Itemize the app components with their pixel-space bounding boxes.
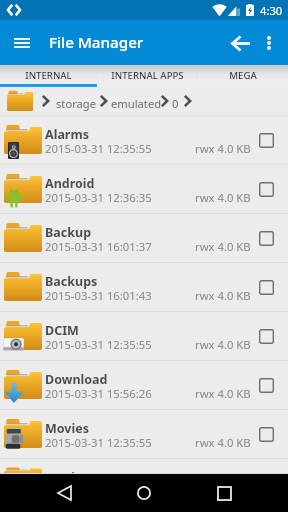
staticText: storage [56, 96, 97, 111]
button[interactable]: Select Alarms [259, 133, 274, 148]
staticText: 0 [172, 96, 179, 111]
staticText: Backup [45, 224, 92, 241]
button[interactable]: INTERNAL APPS [98, 65, 196, 84]
button[interactable]: INTERNAL [0, 65, 97, 84]
staticText: Download [45, 371, 108, 388]
button[interactable]: storage [53, 91, 100, 111]
staticText: Movies [45, 420, 89, 437]
staticText: Android [45, 175, 95, 192]
button[interactable]: Select Android [259, 182, 274, 197]
staticText: rwx 4.0 KB [195, 435, 251, 450]
button[interactable]: Navigate [41, 91, 49, 111]
button[interactable]: Select Movies [259, 427, 274, 442]
staticText: emulated [111, 96, 162, 111]
staticText: 2015-03-31 12:35:55 [45, 484, 152, 499]
button[interactable]: Music [0, 459, 288, 474]
staticText: MEGA [229, 69, 257, 82]
button[interactable]: Back [50, 479, 78, 507]
button[interactable]: Android [0, 165, 288, 214]
staticText: INTERNAL APPS [111, 69, 184, 82]
button[interactable]: Download [0, 361, 288, 410]
button[interactable]: Backup [0, 214, 288, 263]
staticText: rwx 4.0 KB [195, 239, 251, 254]
staticText: Alarms [45, 126, 89, 143]
button[interactable]: Recents [210, 479, 238, 507]
staticText: 2015-03-31 12:36:35 [45, 190, 152, 205]
staticText: rwx 4.0 KB [195, 141, 251, 156]
staticText: rwx 4.0 KB [195, 484, 251, 499]
staticText: 4:30 [260, 3, 283, 18]
button[interactable]: Movies [0, 410, 288, 459]
button[interactable]: DCIM [0, 312, 288, 361]
staticText: 2015-03-31 12:35:55 [45, 337, 152, 352]
button[interactable]: More options [254, 28, 284, 58]
staticText: Music [45, 469, 82, 484]
staticText: DCIM [45, 322, 79, 339]
button[interactable]: Select Backups [259, 280, 274, 295]
button[interactable]: Home [130, 479, 158, 507]
button[interactable]: emulated [108, 91, 165, 111]
button[interactable]: Navigate [183, 91, 191, 111]
button[interactable]: Select Download [259, 378, 274, 393]
staticText: rwx 4.0 KB [195, 386, 251, 401]
staticText: File Manager [49, 32, 144, 53]
button[interactable]: Navigate [160, 91, 168, 111]
staticText: rwx 4.0 KB [195, 190, 251, 205]
staticText: Backups [45, 273, 98, 290]
button[interactable]: Alarms [0, 116, 288, 165]
staticText: INTERNAL [25, 69, 72, 82]
staticText: 2015-03-31 12:35:55 [45, 435, 152, 450]
button[interactable]: 0 [169, 91, 182, 111]
button[interactable]: Menu [4, 25, 40, 61]
staticText: 2015-03-31 12:35:55 [45, 141, 152, 156]
button[interactable]: Root folder [7, 90, 33, 111]
button[interactable]: Select Backup [259, 231, 274, 246]
staticText: 2015-03-31 15:56:26 [45, 386, 152, 401]
button[interactable]: Back [222, 25, 258, 61]
button[interactable]: Navigate [99, 91, 107, 111]
button[interactable]: Select DCIM [259, 329, 274, 344]
button[interactable]: MEGA [197, 65, 288, 84]
button[interactable]: Backups [0, 263, 288, 312]
staticText: rwx 4.0 KB [195, 288, 251, 303]
staticText: 2015-03-31 16:01:37 [45, 239, 152, 254]
staticText: rwx 4.0 KB [195, 337, 251, 352]
staticText: 2015-03-31 16:01:43 [45, 288, 152, 303]
